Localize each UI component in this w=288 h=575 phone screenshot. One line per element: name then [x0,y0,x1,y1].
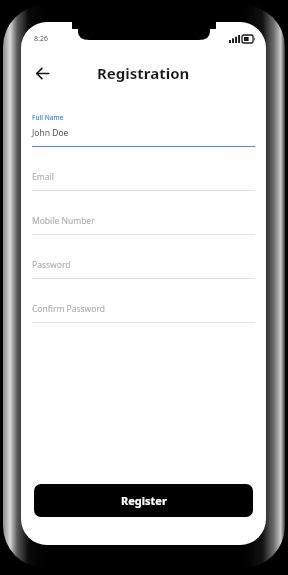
button[interactable]: Back [29,60,55,86]
button[interactable]: Email [32,166,255,191]
button[interactable]: Full Name [32,113,255,147]
staticText: Register [121,493,167,508]
staticText: Confirm Password [32,303,105,315]
staticText: John Doe [32,127,69,139]
button[interactable]: Register [34,484,253,517]
staticText: Registration [97,63,190,83]
button[interactable]: Mobile Number [32,210,255,235]
staticText: Full Name [32,113,64,122]
button[interactable]: Confirm Password [32,298,255,323]
staticText: 8:26 [34,34,48,44]
staticText: Email [32,171,54,183]
staticText: Password [32,259,71,271]
button[interactable]: Password [32,254,255,279]
staticText: Mobile Number [32,215,95,227]
